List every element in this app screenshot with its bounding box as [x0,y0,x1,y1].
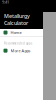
staticText: Recommended apps [4,42,32,45]
button[interactable]: More Apps [0,47,43,54]
staticText: 9:41 [2,0,9,5]
staticText: More Apps [10,48,30,53]
staticText: Home [10,30,21,35]
staticText: Metallurgy Calculator [4,12,30,27]
button[interactable]: Home [0,29,43,36]
